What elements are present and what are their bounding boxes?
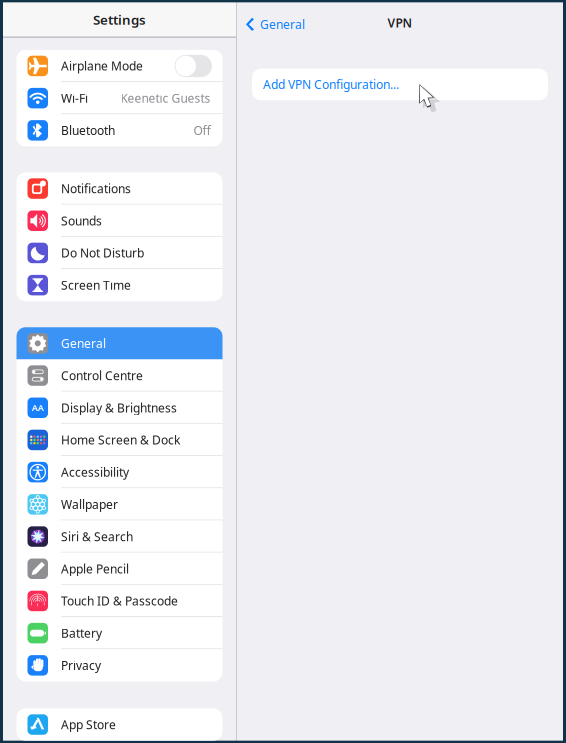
staticText: Touch ID & Passcode xyxy=(61,593,178,609)
button[interactable]: Sounds xyxy=(16,205,222,237)
button[interactable]: Screen Time xyxy=(16,269,222,301)
staticText: Screen Time xyxy=(61,277,131,293)
staticText: General xyxy=(260,16,305,32)
button[interactable]: Bluetooth xyxy=(16,114,222,146)
button[interactable]: App Store xyxy=(16,708,222,741)
staticText: VPN xyxy=(387,15,412,31)
button[interactable]: Privacy xyxy=(16,649,222,681)
staticText: Sounds xyxy=(61,213,102,229)
button[interactable]: Siri & Search xyxy=(16,520,222,553)
staticText: Control Centre xyxy=(61,368,143,383)
button[interactable]: General xyxy=(16,327,222,359)
button[interactable]: General xyxy=(237,2,305,46)
staticText: Keenetic Guests xyxy=(120,90,210,106)
staticText: AA xyxy=(32,402,44,414)
button[interactable]: Notifications xyxy=(16,172,222,205)
staticText: Settings xyxy=(93,11,146,28)
staticText: Siri & Search xyxy=(61,529,133,544)
staticText: Wi-Fi xyxy=(61,90,88,106)
button[interactable]: Wi-Fi xyxy=(16,82,222,114)
button[interactable]: Airplane Mode xyxy=(16,50,222,82)
staticText: General xyxy=(61,335,106,351)
staticText: Add VPN Configuration... xyxy=(263,76,399,92)
staticText: Wallpaper xyxy=(61,496,118,512)
staticText: Display & Brightness xyxy=(61,400,177,416)
staticText: Battery xyxy=(61,625,102,641)
button[interactable]: Battery xyxy=(16,617,222,649)
staticText: Do Not Disturb xyxy=(61,245,144,261)
staticText: Home Screen & Dock xyxy=(61,432,180,448)
staticText: Accessibility xyxy=(61,464,129,480)
button[interactable]: Wallpaper xyxy=(16,488,222,520)
staticText: Privacy xyxy=(61,657,101,673)
button[interactable]: AA xyxy=(16,392,222,424)
staticText: Bluetooth xyxy=(61,122,115,138)
button[interactable]: Touch ID & Passcode xyxy=(16,585,222,617)
button[interactable]: Control Centre xyxy=(16,359,222,392)
button[interactable]: Do Not Disturb xyxy=(16,237,222,269)
staticText: Notifications xyxy=(61,181,131,196)
button[interactable]: Apple Pencil xyxy=(16,553,222,585)
staticText: App Store xyxy=(61,717,116,732)
staticText: Apple Pencil xyxy=(61,561,129,577)
staticText: Off xyxy=(193,122,210,138)
button[interactable]: Home Screen & Dock xyxy=(16,424,222,456)
button[interactable]: Add VPN Configuration... xyxy=(252,69,548,100)
button[interactable]: Accessibility xyxy=(16,456,222,488)
staticText: Airplane Mode xyxy=(61,58,143,74)
